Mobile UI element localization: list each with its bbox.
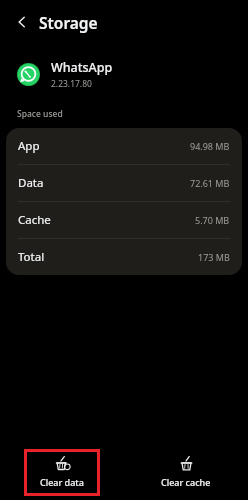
button[interactable]: Clear cache [148,449,224,496]
button[interactable]: Clear data [24,449,100,496]
staticText: 2.23.17.80 [51,78,92,90]
staticText: 173 MB [198,251,230,263]
button[interactable]: WhatsApp [0,54,248,94]
button[interactable]: Total [6,239,242,275]
staticText: 72.61 MB [190,177,230,189]
staticText: 94.98 MB [190,140,230,152]
staticText: Cache [18,212,51,228]
staticText: 5.70 MB [195,214,230,226]
staticText: WhatsApp [51,59,113,76]
staticText: App [18,138,40,154]
staticText: Total [18,249,45,265]
button[interactable]: App [6,128,242,164]
staticText: Clear cache [161,476,211,488]
button[interactable]: Back [8,8,36,36]
staticText: Data [18,175,44,191]
staticText: Clear data [40,476,84,488]
staticText: Space used [17,108,63,120]
staticText: Storage [39,12,98,33]
button[interactable]: Data [6,165,242,201]
button[interactable]: Cache [6,202,242,238]
